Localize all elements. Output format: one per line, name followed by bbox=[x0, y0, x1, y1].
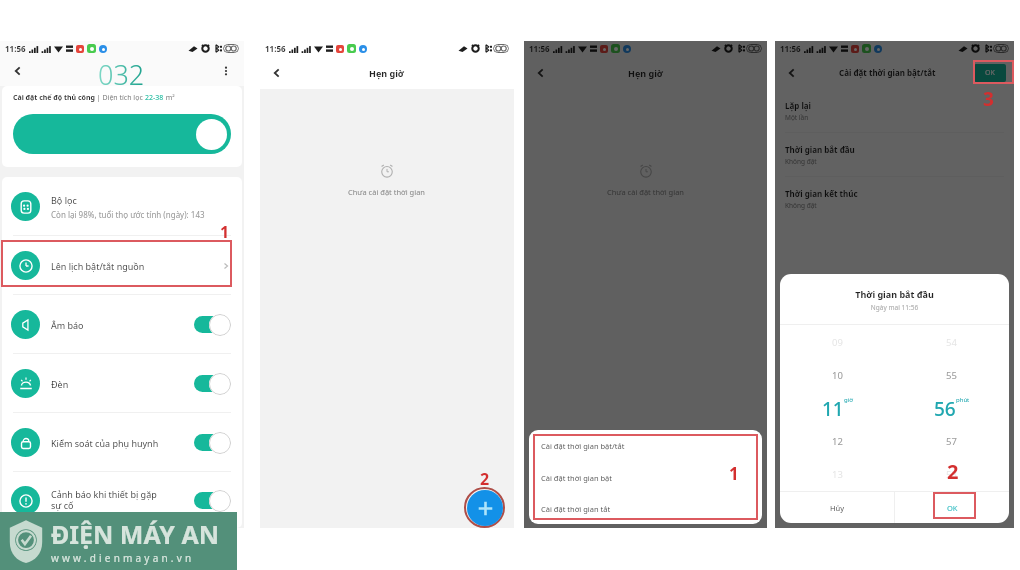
staticText: 11:56 bbox=[265, 43, 286, 54]
button[interactable]: OK bbox=[974, 64, 1006, 82]
staticText: Chưa cài đặt thời gian bbox=[348, 187, 426, 197]
staticText: Lặp lại bbox=[785, 100, 811, 111]
button[interactable]: Cài đặt thời gian bật bbox=[529, 462, 762, 493]
button[interactable]: Lặp lại bbox=[775, 89, 1014, 133]
button[interactable]: Cài đặt thời gian tắt bbox=[529, 493, 762, 524]
staticText: Cài đặt thời gian bật/tắt bbox=[839, 67, 936, 78]
staticText: OK bbox=[947, 503, 958, 513]
staticText: Hẹn giờ bbox=[369, 67, 404, 79]
button[interactable]: Thời gian bắt đầu bbox=[775, 133, 1014, 177]
button[interactable]: Đèn bbox=[194, 372, 231, 395]
staticText: Hẹn giờ bbox=[628, 67, 663, 79]
staticText: Kiểm soát của phụ huynh bbox=[51, 437, 159, 449]
button[interactable]: Cảnh báo khi thiết bị gặp sự cố bbox=[194, 489, 231, 512]
button[interactable]: Cài đặt thời gian bật/tắt bbox=[529, 430, 762, 462]
staticText: 1 bbox=[729, 462, 739, 485]
staticText: Ngày mai 11:56 bbox=[780, 303, 1009, 312]
button[interactable]: Âm báo bbox=[2, 295, 242, 354]
staticText: 11 bbox=[822, 396, 844, 422]
staticText: Bộ lọc bbox=[51, 194, 77, 206]
staticText: Còn lại 98%, tuổi thọ ước tính (ngày): 1… bbox=[51, 209, 205, 220]
button[interactable]: Hủy bbox=[780, 492, 894, 523]
button[interactable]: Back bbox=[532, 64, 550, 82]
staticText: 56 bbox=[934, 396, 956, 422]
button[interactable]: Lên lịch bật/tắt nguồn bbox=[2, 236, 242, 295]
staticText: 54 bbox=[946, 336, 957, 349]
staticText: 11:56 bbox=[780, 43, 801, 54]
button[interactable]: Back bbox=[268, 64, 286, 82]
staticText: 55 bbox=[946, 369, 957, 382]
button[interactable]: More options bbox=[216, 61, 236, 81]
button[interactable]: Kiểm soát của phụ huynh bbox=[2, 413, 242, 472]
staticText: Cảnh báo khi thiết bị gặp sự cố bbox=[51, 488, 157, 512]
button[interactable]: Back bbox=[783, 64, 801, 82]
staticText: Đèn bbox=[51, 378, 69, 390]
staticText: OK bbox=[985, 68, 995, 78]
staticText: 1 bbox=[220, 221, 230, 243]
staticText: 11:56 bbox=[529, 43, 550, 54]
staticText: Không đặt bbox=[785, 201, 817, 210]
staticText: Cài đặt thời gian bật/tắt bbox=[541, 441, 625, 451]
staticText: Thời gian bắt đầu bbox=[785, 144, 855, 155]
staticText: ĐIỆN MÁY AN bbox=[51, 517, 220, 551]
button[interactable]: Kiểm soát của phụ huynh bbox=[194, 431, 231, 454]
button[interactable]: Bộ lọc bbox=[2, 177, 242, 236]
staticText: | Diện tích lọc bbox=[95, 93, 145, 103]
staticText: 032 bbox=[98, 56, 145, 86]
staticText: Cài đặt thời gian tắt bbox=[541, 504, 611, 514]
staticText: Không đặt bbox=[785, 157, 817, 166]
staticText: Hủy bbox=[830, 503, 845, 513]
button[interactable]: Chế độ thủ công bbox=[13, 114, 231, 154]
staticText: 11:56 bbox=[5, 43, 26, 54]
button[interactable]: Âm báo bbox=[194, 313, 231, 336]
staticText: 57 bbox=[946, 435, 957, 448]
staticText: phút bbox=[956, 396, 970, 404]
staticText: Cài đặt thời gian bật bbox=[541, 473, 613, 483]
staticText: www.dienmayan.vn bbox=[51, 551, 195, 565]
button[interactable]: Cảnh báo khi thiết bị gặp sự cố bbox=[2, 472, 242, 528]
staticText: 10 bbox=[832, 369, 843, 382]
staticText: 2 bbox=[480, 468, 490, 490]
button[interactable]: OK bbox=[895, 492, 1009, 523]
staticText: Cài đặt chế độ thủ công bbox=[13, 93, 95, 103]
staticText: Lên lịch bật/tắt nguồn bbox=[51, 260, 145, 272]
button[interactable]: Add timer bbox=[467, 490, 503, 526]
button[interactable]: Back bbox=[8, 61, 28, 81]
button[interactable]: Thời gian kết thúc bbox=[775, 177, 1014, 221]
staticText: 13 bbox=[832, 468, 843, 481]
staticText: Thời gian bắt đầu bbox=[780, 288, 1009, 300]
staticText: Âm báo bbox=[51, 319, 84, 331]
staticText: Thời gian kết thúc bbox=[785, 188, 858, 199]
staticText: giờ bbox=[844, 396, 853, 404]
staticText: 58 bbox=[946, 468, 957, 481]
staticText: m² bbox=[164, 93, 175, 103]
staticText: Một lần bbox=[785, 113, 809, 122]
staticText: 22-38 bbox=[145, 93, 164, 103]
staticText: 09 bbox=[832, 336, 843, 349]
staticText: 12 bbox=[832, 435, 843, 448]
staticText: 3 bbox=[983, 86, 994, 112]
staticText: 2 bbox=[947, 458, 959, 485]
button[interactable]: Đèn bbox=[2, 354, 242, 413]
staticText: Chưa cài đặt thời gian bbox=[607, 187, 685, 197]
